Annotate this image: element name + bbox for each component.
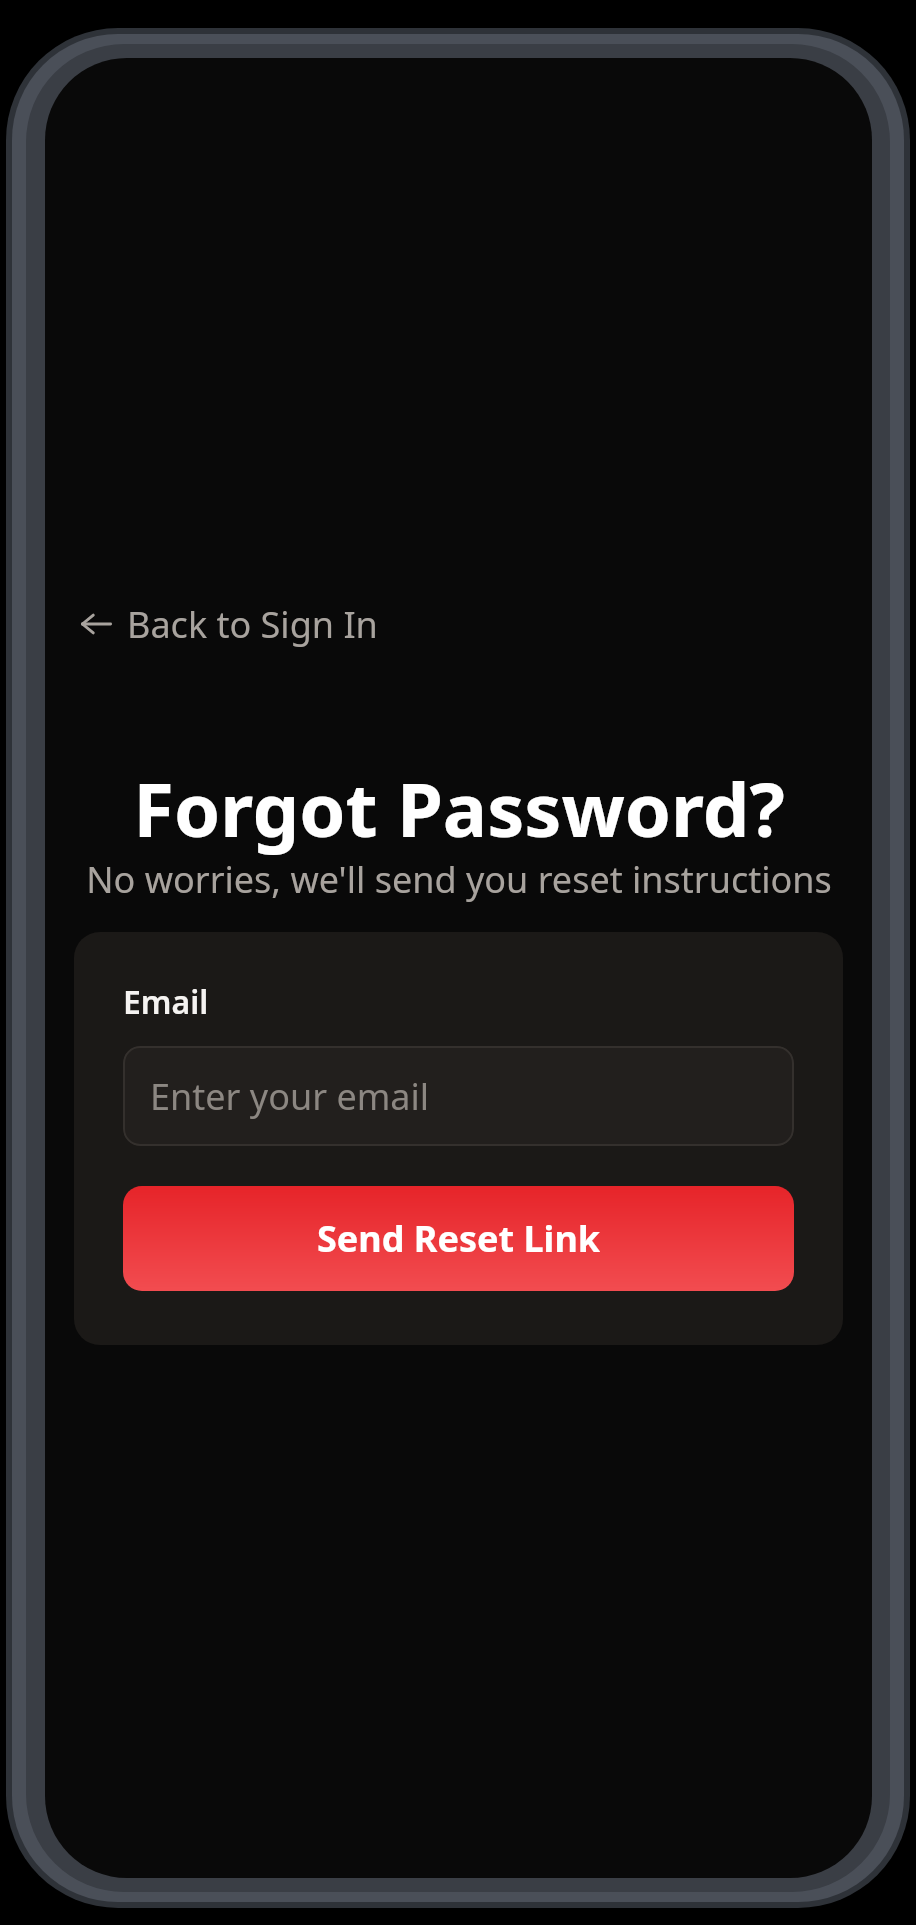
staticText: Send Reset Link <box>317 1214 601 1263</box>
staticText: Forgot Password? <box>133 758 785 859</box>
button[interactable]: Enter your email <box>123 1046 794 1146</box>
other: Back to Sign In <box>79 607 113 641</box>
button[interactable]: Send Reset Link <box>123 1186 794 1291</box>
staticText: Email <box>123 980 209 1024</box>
staticText: Back to Sign In <box>127 600 378 649</box>
staticText: No worries, we'll send you reset instruc… <box>86 855 832 904</box>
staticText: Enter your email <box>150 1072 430 1121</box>
button[interactable]: Back to Sign In <box>75 595 382 653</box>
